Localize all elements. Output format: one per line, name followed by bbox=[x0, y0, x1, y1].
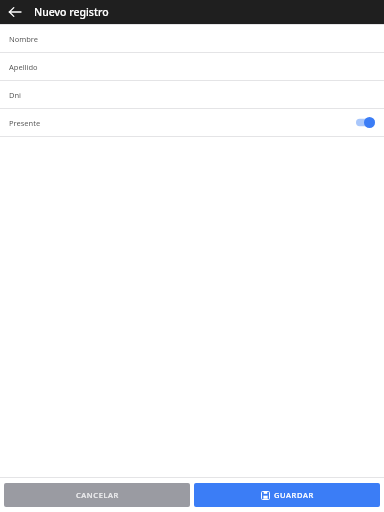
staticText: Apellido bbox=[9, 62, 38, 72]
button[interactable]: CANCELAR bbox=[4, 483, 190, 507]
staticText: Nuevo registro bbox=[34, 5, 109, 19]
button[interactable]: Nombre bbox=[0, 25, 384, 52]
other: Save bbox=[261, 491, 270, 500]
button[interactable]: Save bbox=[194, 483, 380, 507]
button[interactable]: Dni bbox=[0, 81, 384, 108]
staticText: Nombre bbox=[9, 34, 39, 44]
staticText: Presente bbox=[9, 118, 356, 128]
staticText: CANCELAR bbox=[76, 490, 119, 500]
button[interactable]: Back bbox=[5, 2, 25, 22]
button[interactable]: Presente bbox=[0, 109, 384, 136]
button[interactable]: Apellido bbox=[0, 53, 384, 80]
staticText: GUARDAR bbox=[274, 490, 314, 500]
staticText: Dni bbox=[9, 90, 22, 100]
